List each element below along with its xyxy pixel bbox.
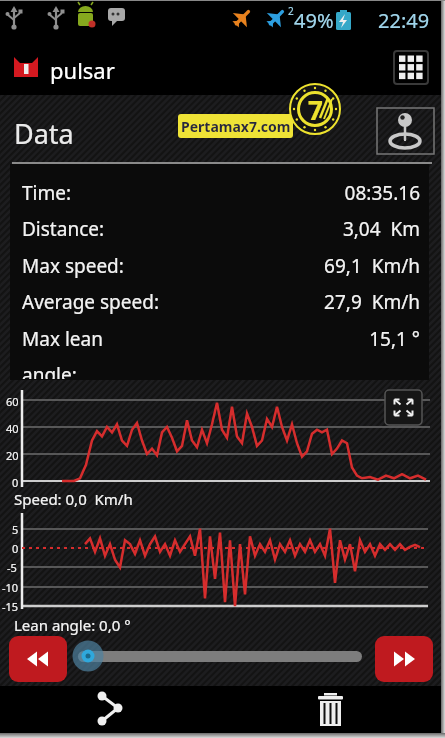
staticText: 69,1 Km/h <box>324 253 420 279</box>
staticText: 20 <box>6 448 19 463</box>
button[interactable] <box>385 390 422 425</box>
staticText: 60 <box>6 394 19 409</box>
staticText: 08:35.16 <box>344 180 420 206</box>
staticText: -15 <box>2 599 19 614</box>
staticText: Distance: <box>22 216 105 242</box>
staticText: 3,04 Km <box>342 216 420 242</box>
button[interactable] <box>375 636 433 682</box>
staticText: Speed: 0,0 Km/h <box>14 489 133 509</box>
staticText: Data <box>14 115 74 152</box>
button[interactable] <box>377 108 434 154</box>
button[interactable] <box>90 688 134 732</box>
staticText: -5 <box>7 560 17 575</box>
staticText: angle: <box>22 362 77 379</box>
staticText: 2 <box>288 4 294 18</box>
button[interactable] <box>9 636 67 682</box>
staticText: -10 <box>2 580 19 595</box>
button[interactable] <box>310 688 354 732</box>
staticText: Lean angle: 0,0 ° <box>14 615 131 635</box>
staticText: 27,9 Km/h <box>324 289 420 315</box>
button[interactable] <box>394 51 428 84</box>
staticText: 7 <box>308 92 323 127</box>
staticText: 15,1 ° <box>369 326 420 352</box>
staticText: Max speed: <box>22 253 124 279</box>
staticText: Pertamax7.com <box>181 117 291 136</box>
staticText: 0 <box>12 475 19 490</box>
staticText: 40 <box>6 421 19 436</box>
staticText: 0 <box>12 541 19 556</box>
staticText: Max lean <box>22 326 103 352</box>
staticText: Time: <box>22 180 72 206</box>
staticText: Average speed: <box>22 289 159 315</box>
staticText: pulsar <box>50 55 115 85</box>
staticText: 22:49 <box>378 7 430 34</box>
staticText: 5 <box>12 522 19 537</box>
staticText: 49% <box>294 7 334 34</box>
